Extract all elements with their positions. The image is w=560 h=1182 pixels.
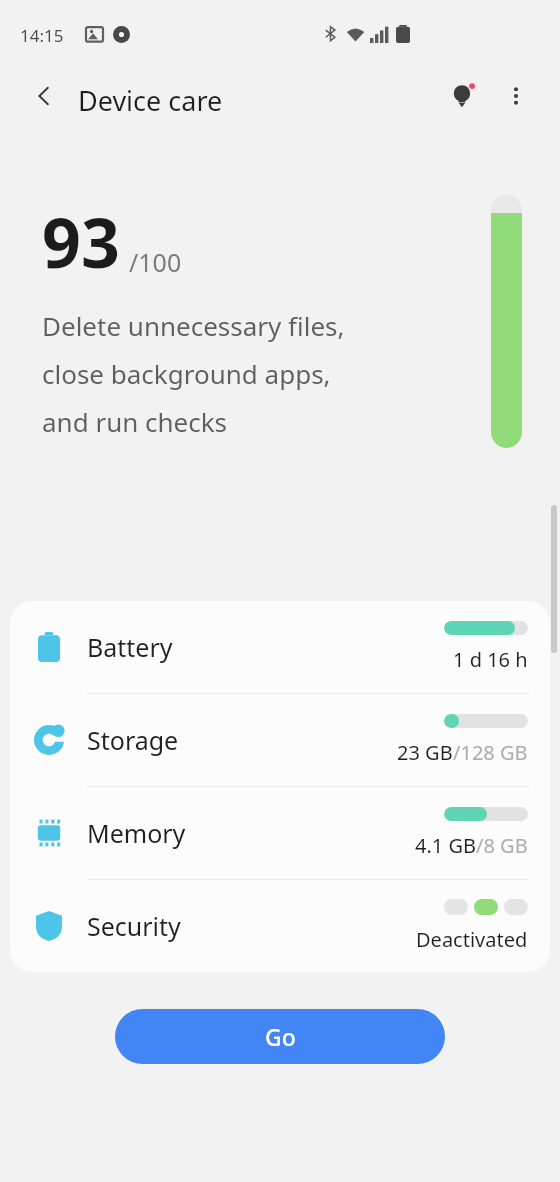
button[interactable]: Back bbox=[20, 72, 68, 120]
staticText: /100 bbox=[129, 245, 182, 279]
staticText: /8 GB bbox=[476, 832, 528, 859]
button[interactable]: Go bbox=[115, 1009, 445, 1064]
staticText: 23 GB bbox=[397, 739, 453, 766]
staticText: 1 d 16 h bbox=[453, 646, 528, 673]
button[interactable]: Battery bbox=[10, 601, 550, 693]
button[interactable]: Memory bbox=[10, 787, 550, 879]
button[interactable]: Storage bbox=[10, 694, 550, 786]
staticText: Memory bbox=[87, 816, 186, 850]
button[interactable]: Security bbox=[10, 880, 550, 972]
staticText: Security bbox=[87, 909, 181, 943]
button[interactable]: Tips bbox=[439, 72, 487, 120]
staticText: Storage bbox=[87, 723, 179, 757]
staticText: Delete unnecessary files, close backgrou… bbox=[42, 308, 345, 439]
staticText: /128 GB bbox=[453, 739, 528, 766]
staticText: Device care bbox=[78, 82, 223, 119]
staticText: Go bbox=[265, 1021, 296, 1052]
staticText: 4.1 GB bbox=[415, 832, 476, 859]
staticText: Deactivated bbox=[416, 926, 528, 953]
button[interactable]: More options bbox=[492, 72, 540, 120]
staticText: Battery bbox=[87, 630, 173, 664]
staticText: 14:15 bbox=[20, 24, 64, 47]
staticText: 93 bbox=[42, 195, 120, 288]
